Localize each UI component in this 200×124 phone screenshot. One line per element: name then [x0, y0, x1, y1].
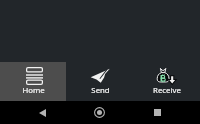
- button[interactable]: Back: [31, 101, 53, 124]
- staticText: Home: [22, 85, 45, 96]
- button[interactable]: Send: [66, 62, 133, 101]
- staticText: Send: [91, 85, 110, 96]
- button[interactable]: Home: [88, 101, 111, 124]
- button[interactable]: Receive: [133, 62, 200, 101]
- button[interactable]: Recents: [146, 101, 168, 124]
- button[interactable]: Home: [0, 62, 66, 101]
- staticText: Receive: [153, 85, 181, 96]
